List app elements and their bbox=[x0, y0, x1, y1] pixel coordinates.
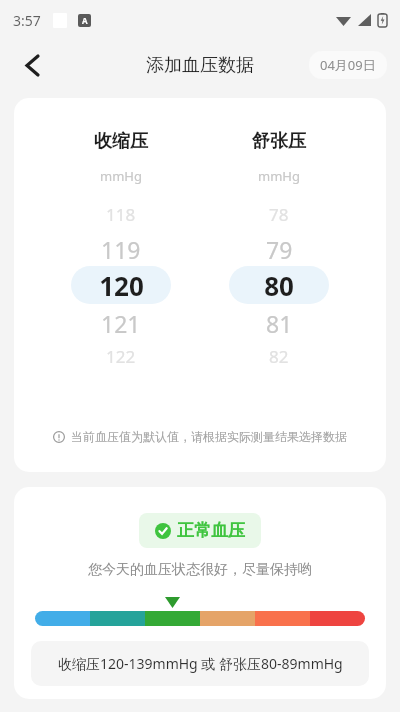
staticText: 79 bbox=[266, 234, 293, 262]
staticText: 当前血压值为默认值，请根据实际测量结果选择数据 bbox=[71, 429, 347, 444]
staticText: 收缩压 bbox=[94, 130, 148, 153]
button[interactable]: 122 bbox=[106, 344, 136, 368]
button[interactable]: 78 bbox=[269, 202, 289, 226]
staticText: 收缩压120-139mmHg 或 舒张压80-89mmHg bbox=[58, 654, 343, 673]
button[interactable]: Back bbox=[10, 43, 54, 87]
button[interactable]: 79 bbox=[266, 234, 293, 262]
staticText: 81 bbox=[266, 308, 293, 336]
button[interactable]: 收缩压120-139mmHg 或 舒张压80-89mmHg bbox=[31, 641, 369, 686]
button[interactable]: 119 bbox=[101, 234, 141, 262]
button[interactable]: 121 bbox=[101, 308, 141, 336]
staticText: 3:57 bbox=[13, 11, 41, 30]
staticText: 121 bbox=[101, 308, 141, 336]
button[interactable]: 80 bbox=[229, 266, 329, 304]
button[interactable]: 118 bbox=[106, 202, 136, 226]
button[interactable]: 04月09日 bbox=[309, 51, 387, 79]
button[interactable]: 82 bbox=[269, 344, 289, 368]
staticText: 舒张压 bbox=[252, 130, 306, 153]
staticText: 80 bbox=[264, 268, 294, 303]
button[interactable]: 120 bbox=[71, 266, 171, 304]
staticText: mmHg bbox=[258, 167, 300, 185]
staticText: 82 bbox=[269, 345, 289, 368]
staticText: 04月09日 bbox=[320, 56, 376, 74]
staticText: 122 bbox=[106, 345, 136, 368]
staticText: 添加血压数据 bbox=[146, 54, 254, 77]
staticText: 正常血压 bbox=[177, 520, 245, 541]
staticText: 78 bbox=[269, 203, 289, 226]
button[interactable]: 正常血压 bbox=[139, 513, 261, 548]
staticText: 您今天的血压状态很好，尽量保持哟 bbox=[88, 561, 312, 579]
staticText: A bbox=[82, 15, 88, 26]
staticText: 118 bbox=[106, 203, 136, 226]
staticText: 119 bbox=[101, 234, 141, 262]
staticText: mmHg bbox=[100, 167, 142, 185]
button[interactable]: 81 bbox=[266, 308, 293, 336]
staticText: 120 bbox=[99, 268, 144, 303]
